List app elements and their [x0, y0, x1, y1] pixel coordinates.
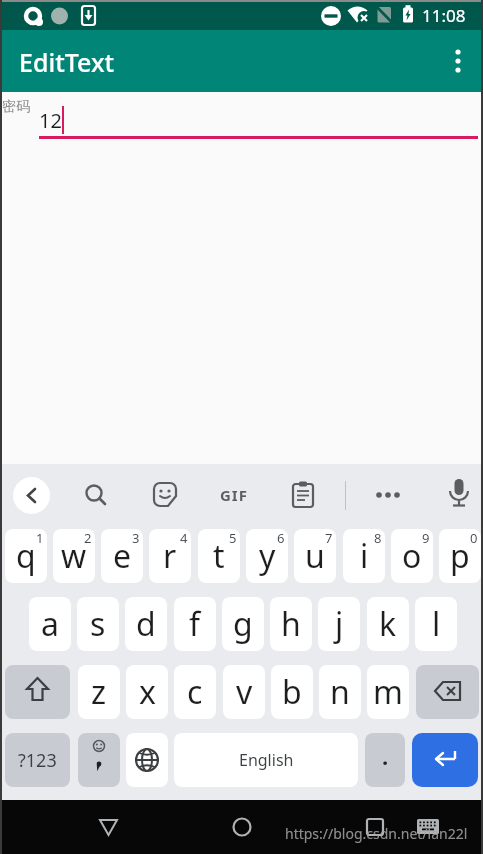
staticText: c [187, 670, 203, 714]
button[interactable]: English [174, 733, 358, 787]
button[interactable] [88, 806, 130, 848]
button[interactable]: q [5, 529, 47, 583]
button[interactable]: p [439, 529, 481, 583]
staticText: q [16, 534, 36, 578]
button[interactable] [148, 478, 182, 512]
button[interactable]: u [294, 529, 336, 583]
staticText: 7 [325, 529, 333, 547]
staticText: g [233, 602, 253, 646]
staticText: j [335, 602, 344, 646]
staticText: f [189, 602, 201, 646]
button[interactable]: b [271, 665, 313, 719]
staticText: . [382, 741, 389, 771]
staticText: a [41, 602, 59, 646]
button[interactable]: s [77, 597, 119, 651]
button[interactable]: o [391, 529, 433, 583]
button[interactable]: e [101, 529, 143, 583]
staticText: p [450, 534, 470, 578]
button[interactable] [13, 477, 50, 514]
staticText: h [281, 602, 301, 646]
button[interactable] [440, 43, 476, 79]
staticText: r [163, 534, 177, 578]
button[interactable] [412, 808, 444, 844]
staticText: u [305, 534, 325, 578]
button[interactable] [79, 478, 113, 512]
staticText: m [373, 670, 403, 714]
staticText: 1 [36, 529, 44, 547]
staticText: y [259, 534, 276, 578]
button[interactable] [412, 733, 478, 787]
staticText: i [360, 534, 369, 578]
staticText: e [113, 534, 132, 578]
button[interactable] [416, 665, 479, 719]
button[interactable]: n [319, 665, 361, 719]
staticText: n [330, 670, 350, 714]
button[interactable]: i [343, 529, 385, 583]
button[interactable]: c [174, 665, 216, 719]
button[interactable]: w [53, 529, 95, 583]
button[interactable]: d [125, 597, 167, 651]
staticText: 3 [132, 529, 140, 547]
staticText: x [139, 670, 156, 714]
button[interactable] [5, 665, 70, 719]
staticText: 12 [39, 107, 62, 134]
button[interactable]: ?123 [5, 733, 70, 787]
button[interactable] [354, 806, 396, 848]
button[interactable]: r [149, 529, 191, 583]
staticText: 11:08 [422, 4, 466, 27]
staticText: ?123 [18, 748, 57, 773]
staticText: 2 [84, 529, 92, 547]
button[interactable]: . [365, 733, 405, 787]
staticText: 8 [374, 529, 382, 547]
staticText: 0 [470, 529, 478, 547]
button[interactable]: m [367, 665, 409, 719]
button[interactable]: v [223, 665, 265, 719]
staticText: 5 [229, 529, 237, 547]
staticText: 6 [277, 529, 285, 547]
button[interactable] [221, 806, 263, 848]
button[interactable]: y [246, 529, 288, 583]
button[interactable]: f [174, 597, 216, 651]
staticText: 密码 [2, 98, 30, 116]
button[interactable]: l [415, 597, 457, 651]
staticText: o [402, 534, 422, 578]
staticText: English [239, 749, 294, 771]
button[interactable] [286, 478, 320, 512]
button[interactable] [442, 476, 476, 514]
button[interactable]: t [198, 529, 240, 583]
staticText: 4 [180, 529, 188, 547]
staticText: 9 [422, 529, 430, 547]
staticText: https://blog.csdn.net/lan22l [285, 824, 468, 843]
button[interactable] [78, 733, 120, 787]
button[interactable]: x [126, 665, 168, 719]
staticText: v [236, 670, 253, 714]
button[interactable] [126, 733, 168, 787]
staticText: t [213, 534, 225, 578]
button[interactable]: j [318, 597, 360, 651]
button[interactable]: g [222, 597, 264, 651]
button[interactable] [371, 478, 405, 512]
staticText: l [432, 602, 441, 646]
button[interactable]: a [29, 597, 71, 651]
button[interactable]: z [78, 665, 120, 719]
button[interactable]: h [270, 597, 312, 651]
staticText: z [91, 670, 107, 714]
staticText: b [282, 670, 302, 714]
staticText: w [61, 534, 87, 578]
staticText: EditText [19, 45, 115, 79]
button[interactable]: k [367, 597, 409, 651]
staticText: d [136, 602, 156, 646]
button[interactable]: GIF [215, 478, 253, 512]
staticText: k [379, 602, 397, 646]
staticText: GIF [220, 485, 248, 505]
staticText: s [90, 602, 106, 646]
